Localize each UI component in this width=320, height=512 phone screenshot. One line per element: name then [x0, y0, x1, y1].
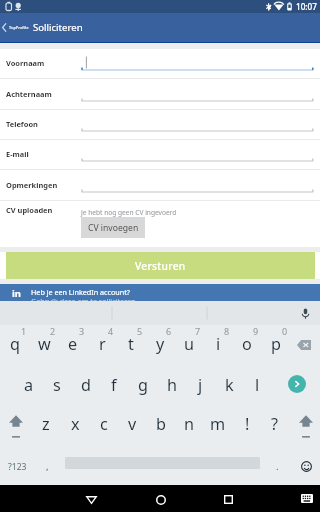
button[interactable]: m: [204, 405, 232, 444]
staticText: 8: [224, 325, 230, 337]
button[interactable]: Versturen: [6, 252, 315, 279]
staticText: Achternaam: [6, 89, 52, 99]
button[interactable]: Voice input: [294, 301, 316, 325]
staticText: t: [128, 333, 134, 355]
button[interactable]: 4: [88, 323, 116, 366]
button[interactable]: Back to TopProfile: [0, 13, 32, 42]
staticText: 1: [21, 325, 27, 337]
button[interactable]: b: [147, 405, 175, 444]
staticText: h: [167, 374, 178, 396]
staticText: 10:07: [296, 1, 317, 12]
staticText: s: [53, 374, 61, 396]
button[interactable]: g: [129, 366, 157, 405]
staticText: 6: [166, 325, 172, 337]
button[interactable]: Shift: [292, 405, 320, 444]
staticText: r: [99, 333, 106, 355]
staticText: n: [184, 413, 195, 435]
staticText: Solliciteren: [33, 21, 83, 34]
button[interactable]: Period: [263, 447, 291, 486]
button[interactable]: 0: [262, 323, 290, 366]
button[interactable]: CV invoegen: [81, 217, 145, 238]
button[interactable]: k: [215, 366, 243, 405]
staticText: E-mail: [6, 149, 29, 159]
staticText: ?: [271, 413, 279, 435]
staticText: in: [12, 287, 22, 300]
button[interactable]: ?: [261, 405, 289, 444]
staticText: f: [111, 374, 117, 396]
button[interactable]: c: [90, 405, 118, 444]
button[interactable]: l: [243, 366, 271, 405]
staticText: CV uploaden: [6, 205, 53, 215]
staticText: v: [128, 413, 137, 435]
staticText: 5: [137, 325, 143, 337]
staticText: y: [156, 333, 165, 355]
staticText: ?123: [8, 461, 27, 473]
staticText: Voornaam: [6, 58, 45, 68]
staticText: q: [10, 333, 20, 355]
staticText: 4: [108, 325, 114, 337]
staticText: d: [81, 374, 91, 396]
staticText: x: [71, 413, 80, 435]
staticText: m: [210, 413, 226, 435]
button[interactable]: in: [0, 284, 320, 301]
button[interactable]: v: [118, 405, 146, 444]
button[interactable]: h: [158, 366, 186, 405]
button[interactable]: !: [233, 405, 261, 444]
staticText: u: [184, 333, 195, 355]
button[interactable]: 9: [233, 323, 261, 366]
staticText: l: [255, 374, 260, 396]
staticText: k: [225, 374, 234, 396]
staticText: Heb je een LinkedIn account?: [31, 287, 130, 297]
staticText: Opmerkingen: [6, 180, 58, 190]
staticText: c: [100, 413, 108, 435]
button[interactable]: s: [43, 366, 71, 405]
staticText: o: [242, 333, 252, 355]
staticText: p: [271, 333, 281, 355]
button[interactable]: x: [61, 405, 89, 444]
button[interactable]: 3: [59, 323, 87, 366]
button[interactable]: z: [32, 405, 60, 444]
button[interactable]: j: [186, 366, 214, 405]
button[interactable]: f: [100, 366, 128, 405]
button[interactable]: 1: [1, 323, 29, 366]
staticText: b: [156, 413, 166, 435]
staticText: Versturen: [135, 259, 186, 273]
staticText: i: [216, 333, 221, 355]
button[interactable]: n: [175, 405, 203, 444]
staticText: z: [42, 413, 50, 435]
staticText: 0: [282, 325, 288, 337]
button[interactable]: Home: [148, 485, 173, 512]
staticText: 2: [50, 325, 56, 337]
staticText: Je hebt nog geen CV ingevoerd: [81, 208, 177, 217]
button[interactable]: Recents: [216, 485, 241, 512]
button[interactable]: Backspace: [289, 323, 318, 366]
staticText: 3: [79, 325, 85, 337]
button[interactable]: Shift: [2, 405, 30, 444]
button[interactable]: a: [15, 366, 43, 405]
button[interactable]: Switch keyboard: [294, 485, 319, 512]
button[interactable]: Comma: [33, 447, 61, 486]
staticText: 7: [195, 325, 201, 337]
staticText: w: [38, 333, 51, 355]
staticText: TopProfile: [9, 25, 29, 30]
button[interactable]: 7: [175, 323, 203, 366]
staticText: g: [138, 374, 148, 396]
button[interactable]: ?123: [3, 447, 32, 486]
button[interactable]: 5: [117, 323, 145, 366]
button[interactable]: d: [72, 366, 100, 405]
staticText: CV invoegen: [88, 222, 139, 234]
button[interactable]: Emoji: [292, 447, 320, 486]
staticText: Gebruik deze om te solliciteren: [31, 296, 136, 306]
button[interactable]: 8: [204, 323, 232, 366]
button[interactable]: Back: [79, 485, 104, 512]
button[interactable]: Enter: [288, 375, 306, 393]
staticText: ,: [46, 460, 49, 473]
staticText: a: [24, 374, 34, 396]
button[interactable]: 6: [146, 323, 174, 366]
staticText: e: [68, 333, 78, 355]
button[interactable]: 2: [30, 323, 58, 366]
staticText: Telefoon: [6, 119, 38, 129]
staticText: !: [245, 413, 250, 435]
staticText: .: [276, 460, 279, 473]
